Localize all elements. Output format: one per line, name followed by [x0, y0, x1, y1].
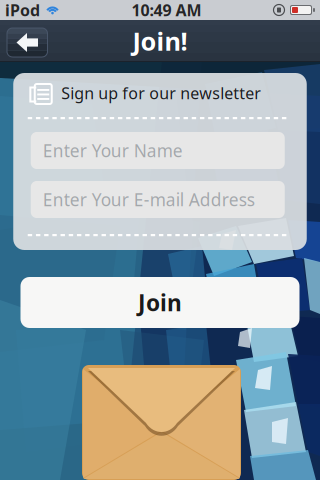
button[interactable]: Enter Your Name: [31, 132, 285, 169]
staticText: 10:49 AM: [131, 0, 201, 21]
staticText: Enter Your E-mail Address: [43, 188, 255, 211]
button[interactable]: Join: [20, 277, 299, 328]
staticText: Join: [138, 287, 182, 317]
staticText: Enter Your Name: [43, 139, 183, 162]
staticText: iPod: [5, 0, 40, 21]
staticText: Sign up for our newsletter: [61, 82, 261, 104]
button[interactable]: Enter Your E-mail Address: [31, 181, 285, 218]
staticText: Join!: [132, 24, 187, 58]
button[interactable]: Back: [6, 27, 48, 57]
